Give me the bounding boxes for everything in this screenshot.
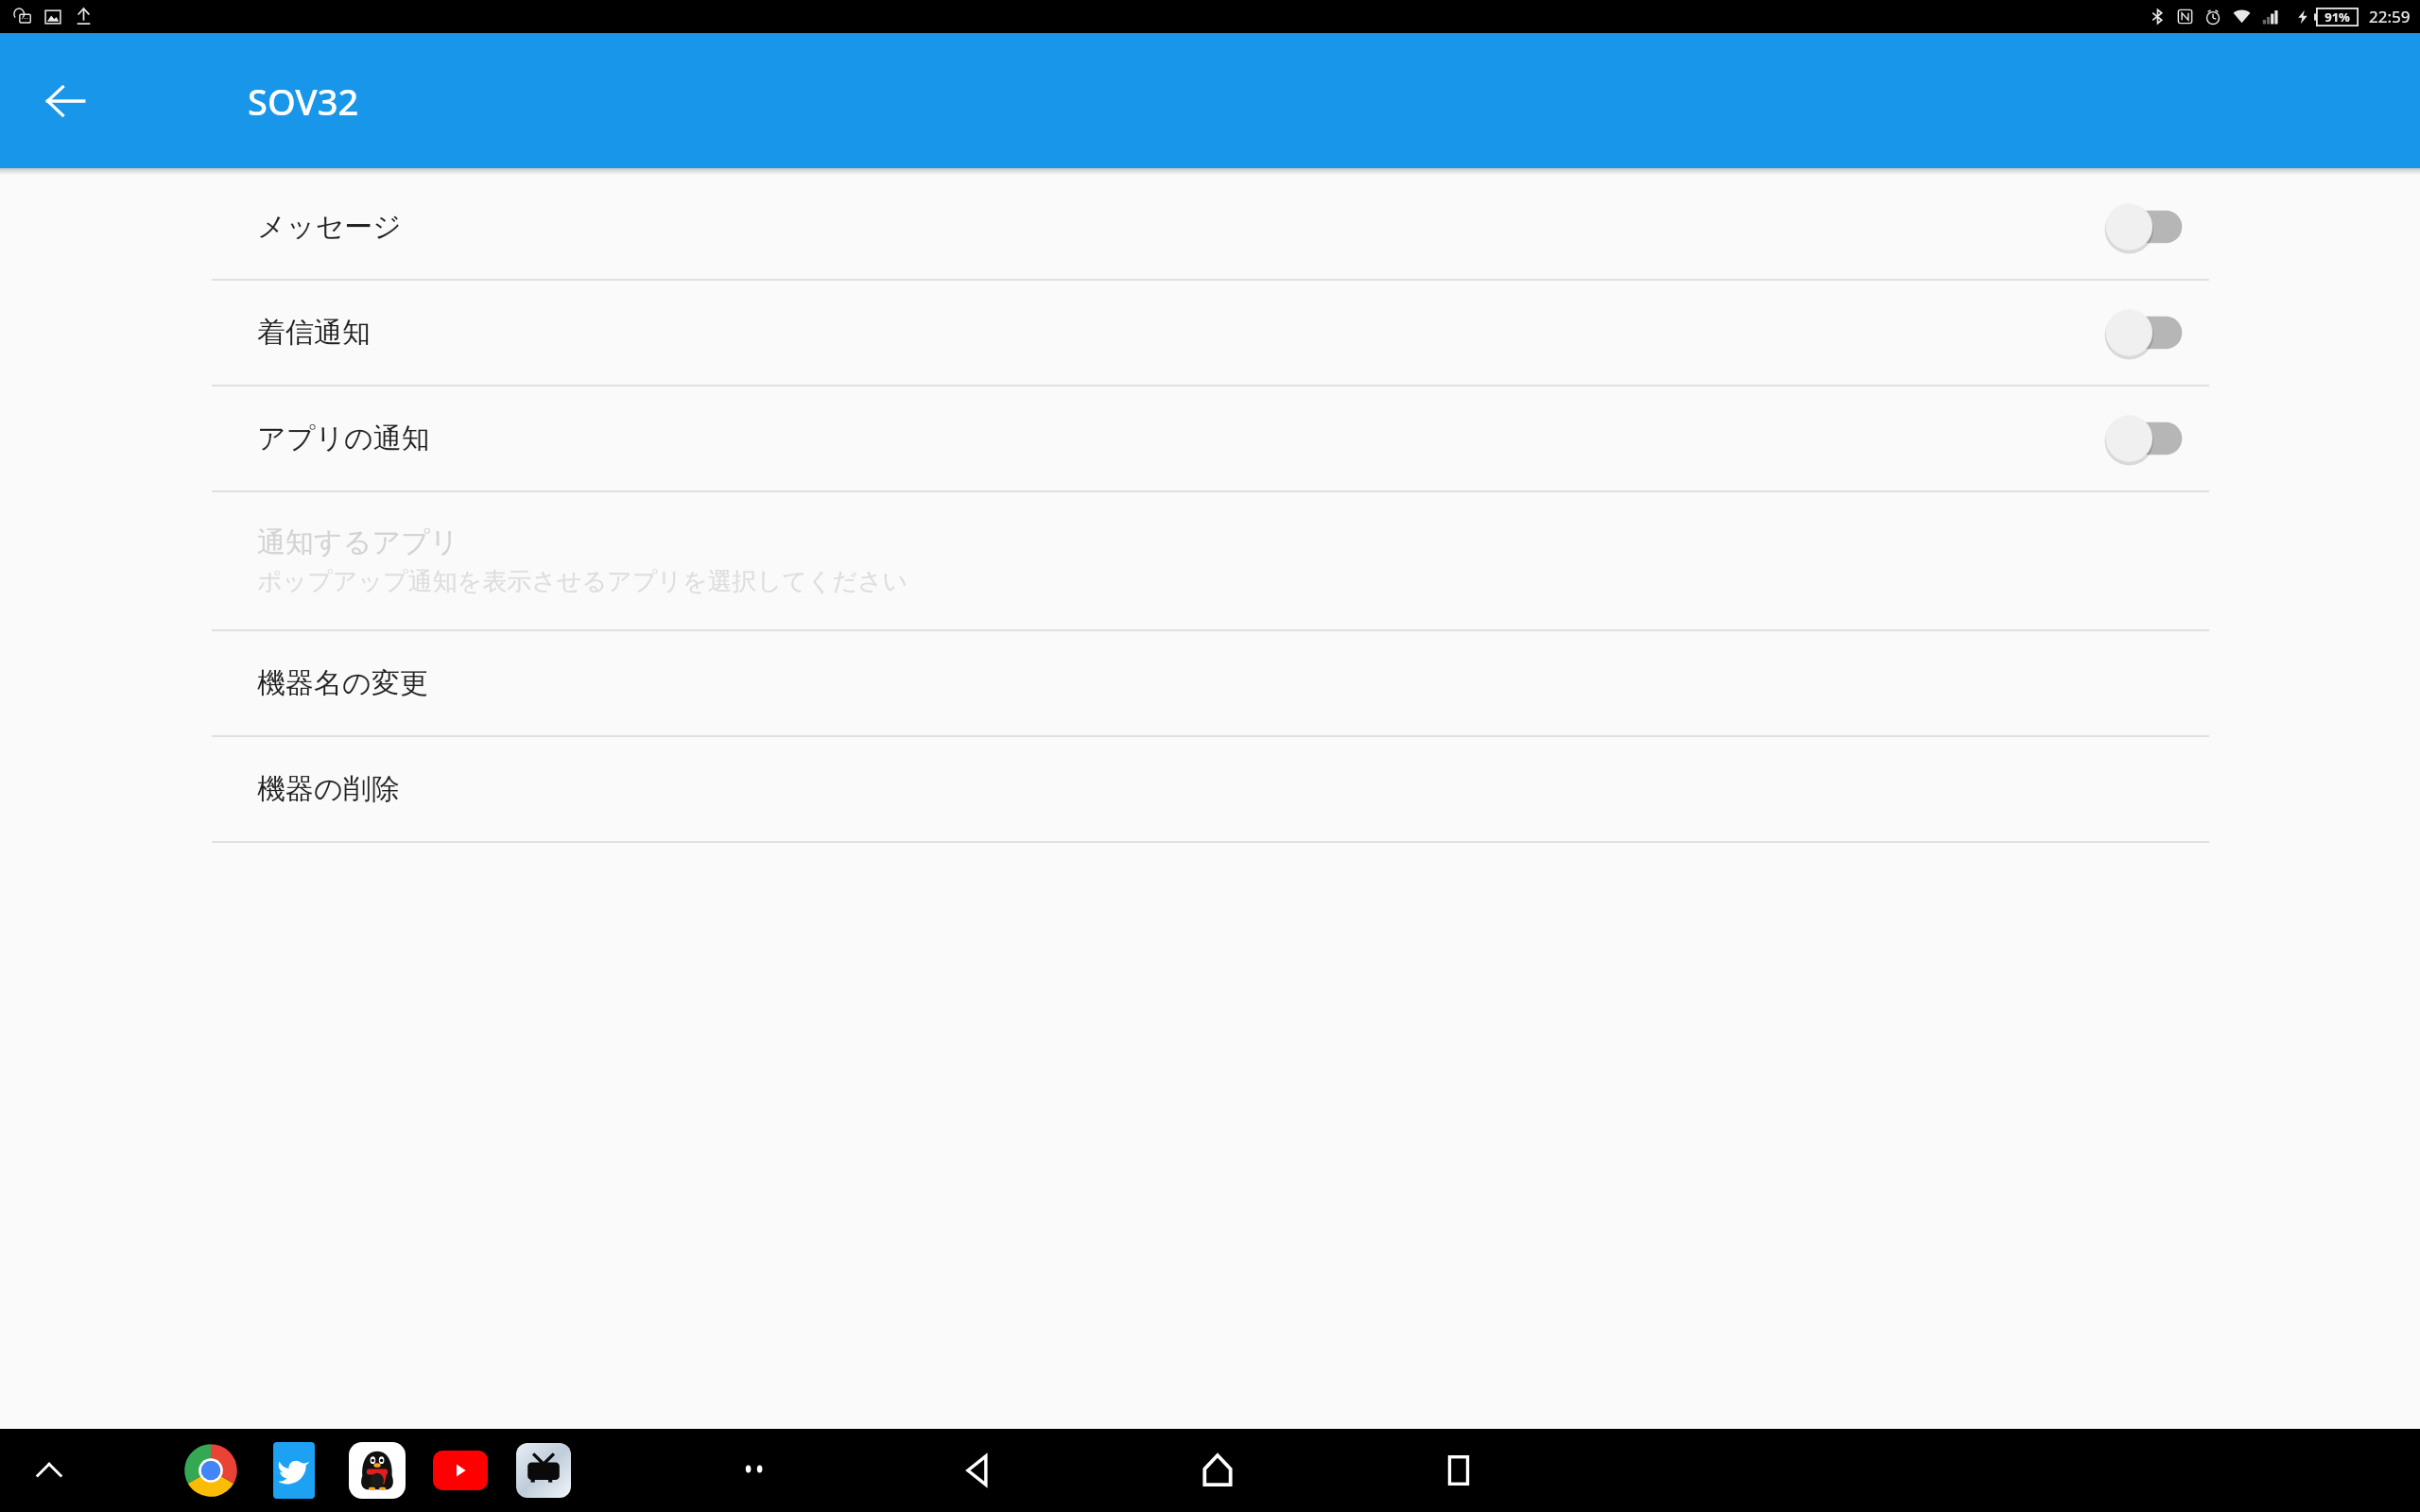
button[interactable]: Twitter — [263, 1439, 325, 1502]
button[interactable]: アプリの通知 — [0, 387, 2420, 490]
button[interactable]: Back — [936, 1430, 1017, 1511]
staticText: 機器名の変更 — [257, 665, 428, 701]
staticText: 機器の削除 — [257, 771, 400, 807]
button[interactable]: Home — [1177, 1430, 1258, 1511]
staticText: ポップアップ通知を表示させるアプリを選択してください — [257, 566, 908, 597]
button[interactable]: YouTube — [429, 1439, 492, 1502]
button[interactable]: TV — [512, 1439, 575, 1502]
staticText: 22:59 — [2369, 6, 2411, 27]
button[interactable]: Expand — [19, 1440, 79, 1501]
button[interactable]: Chrome — [180, 1439, 242, 1502]
button[interactable]: Back — [36, 72, 95, 130]
staticText: SOV32 — [248, 77, 359, 126]
staticText: メッセージ — [257, 209, 2102, 245]
staticText: 91% — [2325, 9, 2350, 26]
staticText: 通知するアプリ — [257, 524, 459, 560]
button[interactable]: 機器の削除 — [0, 737, 2420, 841]
button[interactable]: 機器名の変更 — [0, 631, 2420, 735]
button[interactable]: Recent apps — [1418, 1430, 1499, 1511]
button[interactable]: メッセージ — [0, 175, 2420, 279]
button[interactable]: QQ — [346, 1439, 408, 1502]
button[interactable]: 通知するアプリ — [0, 492, 2420, 629]
staticText: 着信通知 — [257, 315, 2102, 351]
button[interactable]: 着信通知 — [0, 281, 2420, 385]
staticText: アプリの通知 — [257, 421, 2102, 456]
